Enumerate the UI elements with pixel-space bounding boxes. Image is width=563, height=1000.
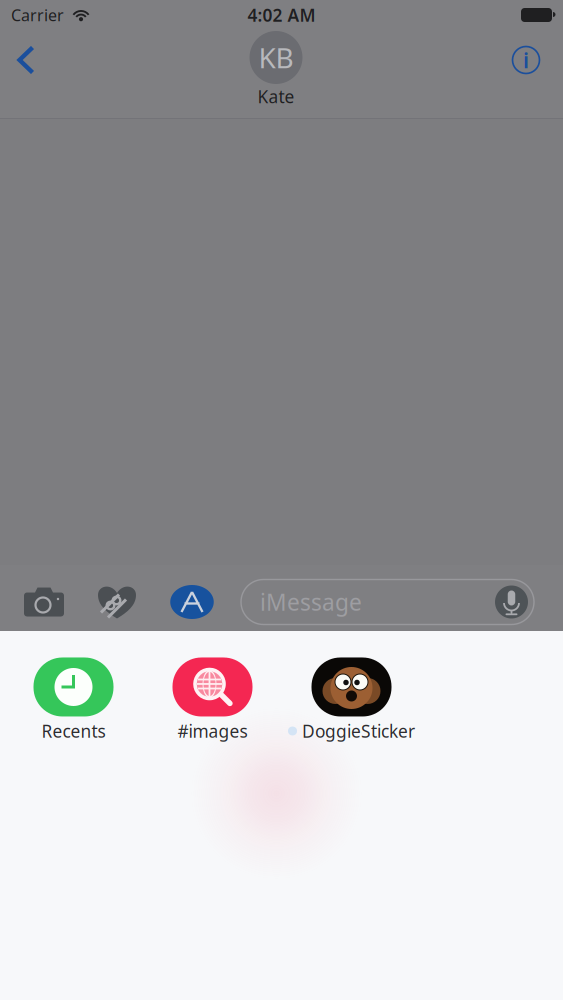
staticText: KB (258, 39, 293, 76)
staticText: Carrier (11, 4, 64, 26)
staticText: #images (177, 719, 247, 742)
staticText: DoggieSticker (302, 719, 415, 742)
staticText: iMessage (260, 587, 362, 617)
staticText: 4:02 AM (247, 3, 315, 26)
button[interactable]: DoggieSticker (282, 655, 421, 745)
button[interactable]: Digital Touch (79, 574, 155, 630)
button[interactable]: Recents (4, 655, 143, 745)
button[interactable]: Camera (9, 574, 79, 630)
staticText: i (523, 46, 529, 74)
staticText: Kate (257, 85, 294, 108)
button[interactable]: Back (2, 31, 50, 117)
button[interactable]: App Store (155, 574, 229, 630)
button[interactable]: iMessage (241, 579, 534, 624)
button[interactable]: Details (502, 31, 550, 117)
button[interactable]: KB (249, 31, 302, 117)
button[interactable]: #images (143, 655, 282, 745)
staticText: Recents (41, 719, 105, 742)
